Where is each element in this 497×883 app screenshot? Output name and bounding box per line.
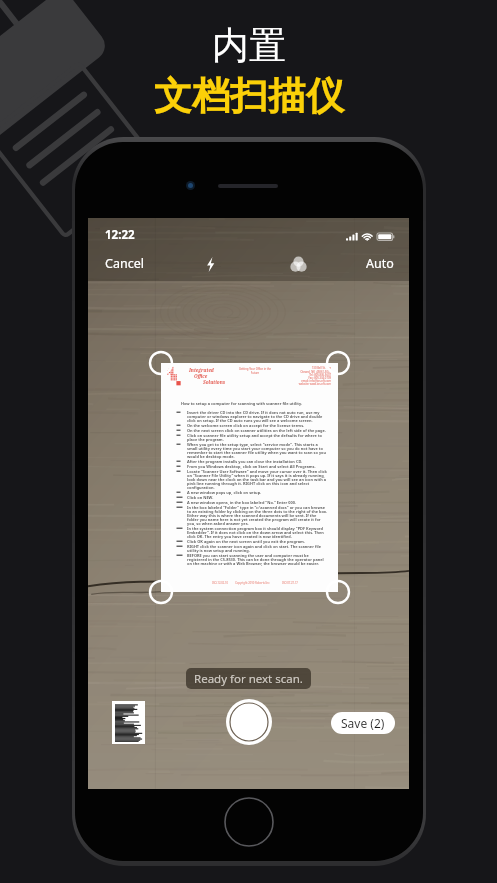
staticText: A new window opens, in the box labeled "… — [187, 500, 328, 505]
staticText: In the box labeled "Folder" type in "c:\… — [187, 505, 328, 526]
staticText: 内置 — [212, 22, 286, 69]
button[interactable]: Flash — [197, 251, 223, 277]
staticText: Cancel — [105, 255, 144, 272]
staticText: On the welcome screen click on accept fo… — [187, 423, 328, 428]
staticText: Getting Your Office in the Future — [235, 367, 275, 374]
staticText: How to setup a computer for scanning wit… — [181, 401, 326, 406]
staticText: Click on scanner file utility setup and … — [187, 433, 328, 442]
staticText: A new window pops up, click on setup. — [187, 490, 328, 495]
staticText: When you get to the setup type, select "… — [187, 442, 328, 459]
staticText: 文档扫描仪 — [154, 72, 344, 120]
staticText: In the system connection program box it … — [187, 526, 328, 539]
staticText: After the program installs you can close… — [187, 459, 328, 464]
staticText: Ready for next scan. — [194, 671, 303, 687]
staticText: ISO-12.02.10 Copyright 2010 Roberts Inc … — [195, 581, 315, 585]
staticText: Integrated — [189, 367, 214, 373]
staticText: On the next screen click on scanner util… — [187, 428, 328, 433]
button[interactable]: Save (2) — [331, 712, 395, 734]
staticText: Office — [194, 373, 208, 379]
staticText: Auto — [366, 255, 394, 272]
button[interactable]: Auto — [359, 250, 401, 277]
staticText: From you Windows desktop, click on Start… — [187, 464, 328, 469]
staticText: 130 Bell St. Ste Oxnard, NK 45861-5007 T… — [266, 366, 331, 385]
button[interactable]: Capture — [226, 699, 272, 745]
staticText: Solutions — [203, 379, 226, 385]
staticText: Click on NEW. — [187, 495, 328, 500]
staticText: 12:22 — [105, 227, 135, 243]
staticText: Click OK again on the next screen until … — [187, 539, 328, 544]
staticText: Save (2) — [341, 715, 385, 731]
staticText: Locate "Scanner User Software" and move … — [187, 469, 328, 490]
staticText: Insert the driver CD into the CD drive. … — [187, 410, 328, 423]
button[interactable]: Cancel — [98, 250, 151, 277]
staticText: BEFORE you can start scanning the user a… — [187, 553, 328, 566]
staticText: RIGHT click the scanner icon again and c… — [187, 544, 328, 553]
button[interactable]: Filter — [285, 251, 311, 277]
button[interactable]: Last scan preview — [112, 701, 145, 744]
